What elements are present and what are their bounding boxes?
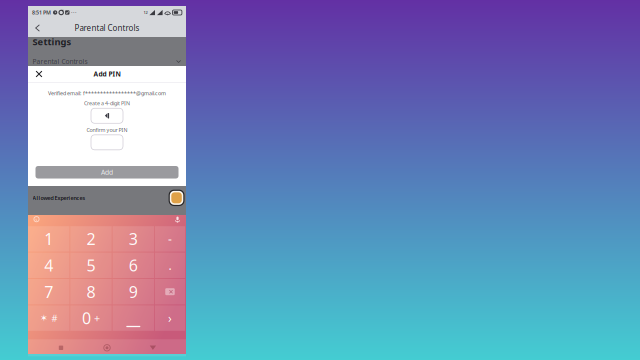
staticText: 3 <box>129 228 138 249</box>
button[interactable]: 2 <box>70 226 112 252</box>
staticText: - <box>168 231 172 247</box>
staticText: Settings <box>32 36 71 48</box>
staticText: 8 <box>86 281 95 302</box>
staticText: ••• <box>71 10 77 15</box>
staticText: Add PIN <box>93 70 120 78</box>
button[interactable]: Backspace <box>155 279 185 304</box>
staticText: Create a 4-digit PIN <box>84 100 130 107</box>
button[interactable]: Profile <box>169 190 184 206</box>
button[interactable]: 7 <box>28 279 69 304</box>
button[interactable]: Voice input <box>171 213 184 226</box>
staticText: 12 <box>144 10 148 15</box>
button[interactable]: 0 plus <box>70 305 112 331</box>
staticText: # <box>51 312 57 324</box>
button[interactable]: 3 <box>113 226 154 252</box>
button[interactable]: PIN <box>91 108 123 123</box>
button[interactable]: 8 <box>70 279 112 304</box>
button[interactable]: 6 <box>113 253 154 278</box>
button[interactable]: Space <box>113 305 154 331</box>
button[interactable]: Confirm PIN <box>91 135 123 150</box>
staticText: 8:51 PM <box>32 9 51 16</box>
staticText: 6 <box>129 255 138 276</box>
staticText: › <box>168 310 172 326</box>
button[interactable]: - <box>155 226 185 252</box>
button[interactable]: Parental Controls <box>28 56 186 67</box>
staticText: 4 <box>44 255 53 276</box>
staticText: 2 <box>86 228 95 249</box>
staticText: 7 <box>44 281 53 302</box>
staticText: Parental Controls <box>32 57 87 66</box>
button[interactable]: › <box>155 305 185 331</box>
staticText: Allowed Experiences <box>32 194 85 201</box>
staticText: 1 <box>44 228 53 249</box>
button[interactable]: 4 <box>28 253 69 278</box>
staticText: Verified email: f*****************@gmail… <box>48 90 166 97</box>
staticText: Parental Controls <box>74 23 139 33</box>
button[interactable]: Recents <box>48 339 74 356</box>
button[interactable]: Star and hash <box>28 305 69 331</box>
button[interactable]: Recent <box>30 213 43 226</box>
button[interactable]: 5 <box>70 253 112 278</box>
staticText: 9 <box>129 281 138 302</box>
button[interactable]: 9 <box>113 279 154 304</box>
button[interactable]: 1 <box>28 226 69 252</box>
button[interactable]: Back <box>28 19 47 37</box>
staticText: . <box>168 257 171 273</box>
staticText: Manage what your kids can watch on this … <box>32 214 114 219</box>
button[interactable]: Back <box>140 339 166 356</box>
button[interactable]: Close <box>28 65 50 82</box>
staticText: 5 <box>86 255 95 276</box>
staticText: 0 <box>82 307 91 329</box>
staticText: + <box>94 311 100 325</box>
button[interactable]: Add <box>35 166 178 178</box>
staticText: Add <box>101 168 113 177</box>
staticText: Confirm your PIN <box>86 126 127 133</box>
button[interactable]: Home <box>94 339 120 356</box>
button[interactable]: . <box>155 253 185 278</box>
staticText: ✶ <box>40 313 48 323</box>
